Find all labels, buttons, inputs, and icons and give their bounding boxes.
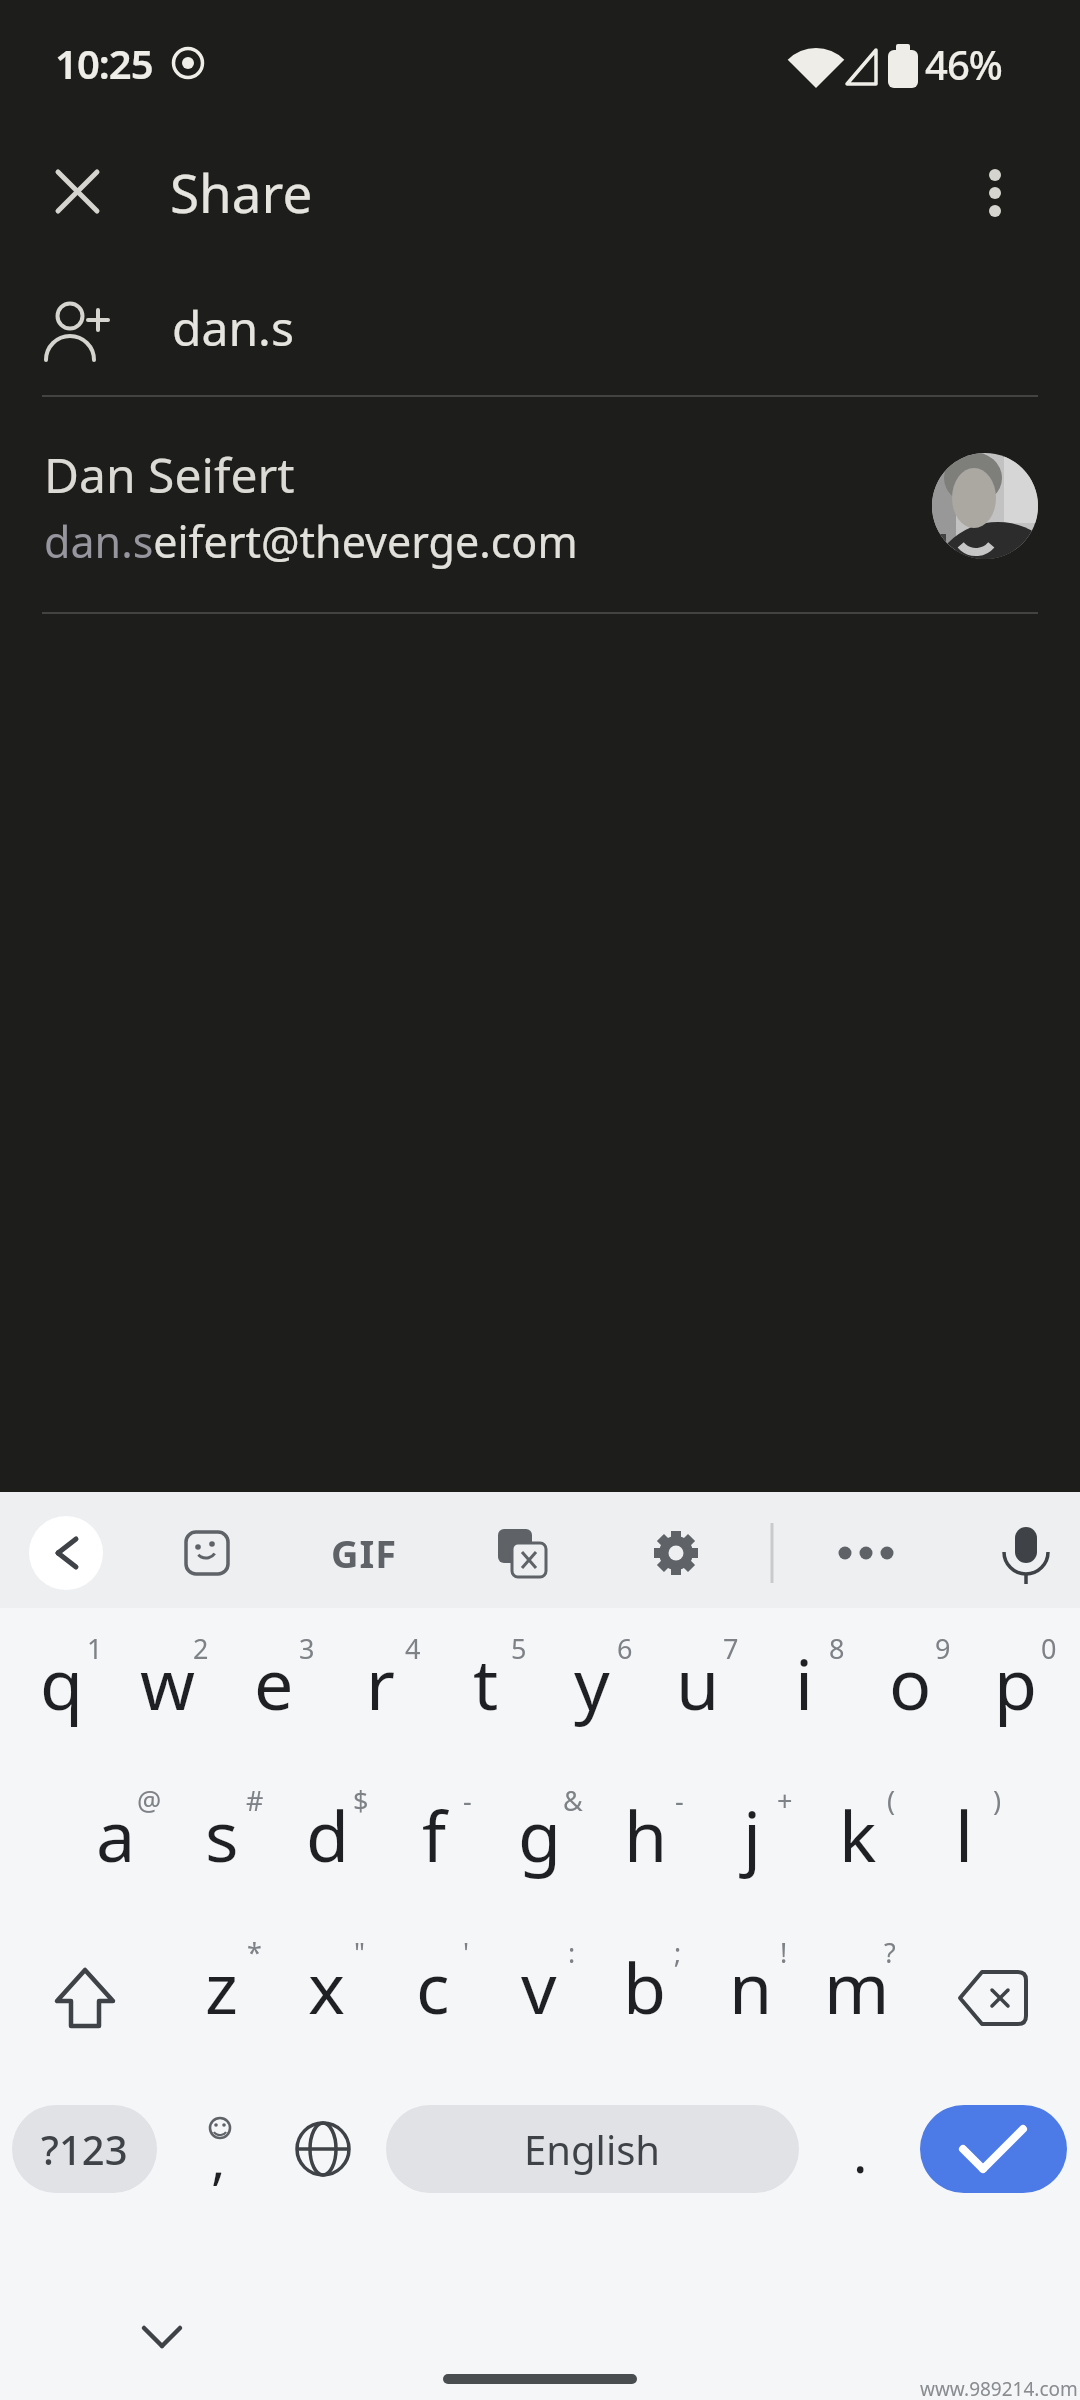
staticText: m [824,1939,890,2034]
staticText: 0 [1041,1630,1057,1667]
staticText: 8 [829,1630,845,1667]
staticText: ? [884,1934,896,1971]
staticText: b [623,1939,667,2034]
staticText: : [568,1934,576,1971]
button[interactable] [592,1928,698,2056]
button[interactable] [857,1624,963,1752]
button[interactable] [0,398,1080,612]
staticText: ' [463,1934,470,1971]
button[interactable] [698,1928,804,2056]
staticText: n [729,1939,773,2034]
button[interactable] [486,1928,592,2056]
staticText: l [955,1787,974,1882]
button[interactable]: ?123 [12,2105,157,2193]
button[interactable] [115,1624,221,1752]
button[interactable] [751,1624,857,1752]
staticText: e [254,1635,294,1730]
button[interactable] [639,1516,713,1590]
button[interactable] [940,1940,1050,2050]
staticText: ) [993,1782,1002,1819]
staticText: English [524,2122,661,2176]
button[interactable] [221,1624,327,1752]
staticText: GIF [331,1527,398,1579]
button[interactable] [380,1928,486,2056]
staticText: ?123 [41,2122,128,2176]
button[interactable] [963,1624,1069,1752]
staticText: , [211,2121,226,2195]
button[interactable] [29,1516,103,1590]
button[interactable] [699,1776,805,1904]
button[interactable] [804,1928,910,2056]
button[interactable] [539,1624,645,1752]
staticText: 3 [299,1630,315,1667]
staticText: www.989214.com [920,2376,1078,2400]
staticText: 9 [935,1630,951,1667]
staticText: " [354,1934,366,1971]
staticText: i [795,1635,814,1730]
staticText: j [743,1787,762,1882]
staticText: v [521,1939,557,2034]
staticText: ; [674,1934,682,1971]
staticText: q [40,1635,84,1730]
staticText: . [853,2115,868,2189]
button[interactable] [381,1776,487,1904]
button[interactable] [805,1776,911,1904]
staticText: # [246,1782,264,1819]
button[interactable] [920,2105,1067,2193]
staticText: 6 [617,1630,633,1667]
button[interactable] [989,1516,1063,1590]
button[interactable] [274,1928,380,2056]
staticText: dan.seifert@theverge.com [44,512,578,571]
button[interactable] [40,157,112,229]
button[interactable] [275,1776,381,1904]
button[interactable] [645,1624,751,1752]
staticText: w [140,1635,196,1730]
staticText: o [889,1635,932,1730]
staticText: - [675,1782,684,1819]
staticText: dan.s [172,295,294,360]
staticText: 7 [723,1630,739,1667]
button[interactable] [100,2290,224,2384]
staticText: h [624,1787,668,1882]
staticText: ( [887,1782,896,1819]
staticText: c [416,1939,450,2034]
button[interactable] [433,1624,539,1752]
button[interactable] [170,1516,244,1590]
button[interactable] [270,2105,376,2193]
staticText: k [839,1787,877,1882]
staticText: ! [780,1934,788,1971]
button[interactable] [593,1776,699,1904]
staticText: y [574,1635,610,1730]
staticText: u [676,1635,720,1730]
staticText: s [205,1787,239,1882]
button[interactable] [168,1928,274,2056]
button[interactable] [807,2105,913,2193]
button[interactable] [484,1516,558,1590]
staticText: $ [353,1782,369,1819]
staticText: Dan Seifert [44,442,295,507]
staticText: 2 [193,1630,209,1667]
staticText: a [96,1787,136,1882]
button[interactable] [327,1516,401,1590]
staticText: Share [170,156,313,228]
staticText: z [205,1939,238,2034]
button[interactable] [165,2105,271,2193]
button[interactable] [63,1776,169,1904]
staticText: 10:25 [55,36,153,90]
button[interactable]: English [386,2105,799,2193]
staticText: & [563,1782,583,1819]
button[interactable] [169,1776,275,1904]
button[interactable] [0,280,1080,396]
button[interactable] [9,1624,115,1752]
staticText: t [473,1635,499,1730]
staticText: d [306,1787,350,1882]
button[interactable] [829,1516,903,1590]
button[interactable] [911,1776,1017,1904]
staticText: 4 [405,1630,421,1667]
button[interactable] [487,1776,593,1904]
button[interactable] [30,1940,140,2050]
staticText: r [366,1635,395,1730]
button[interactable] [327,1624,433,1752]
staticText: 46% [925,37,1002,91]
button[interactable] [959,157,1031,229]
